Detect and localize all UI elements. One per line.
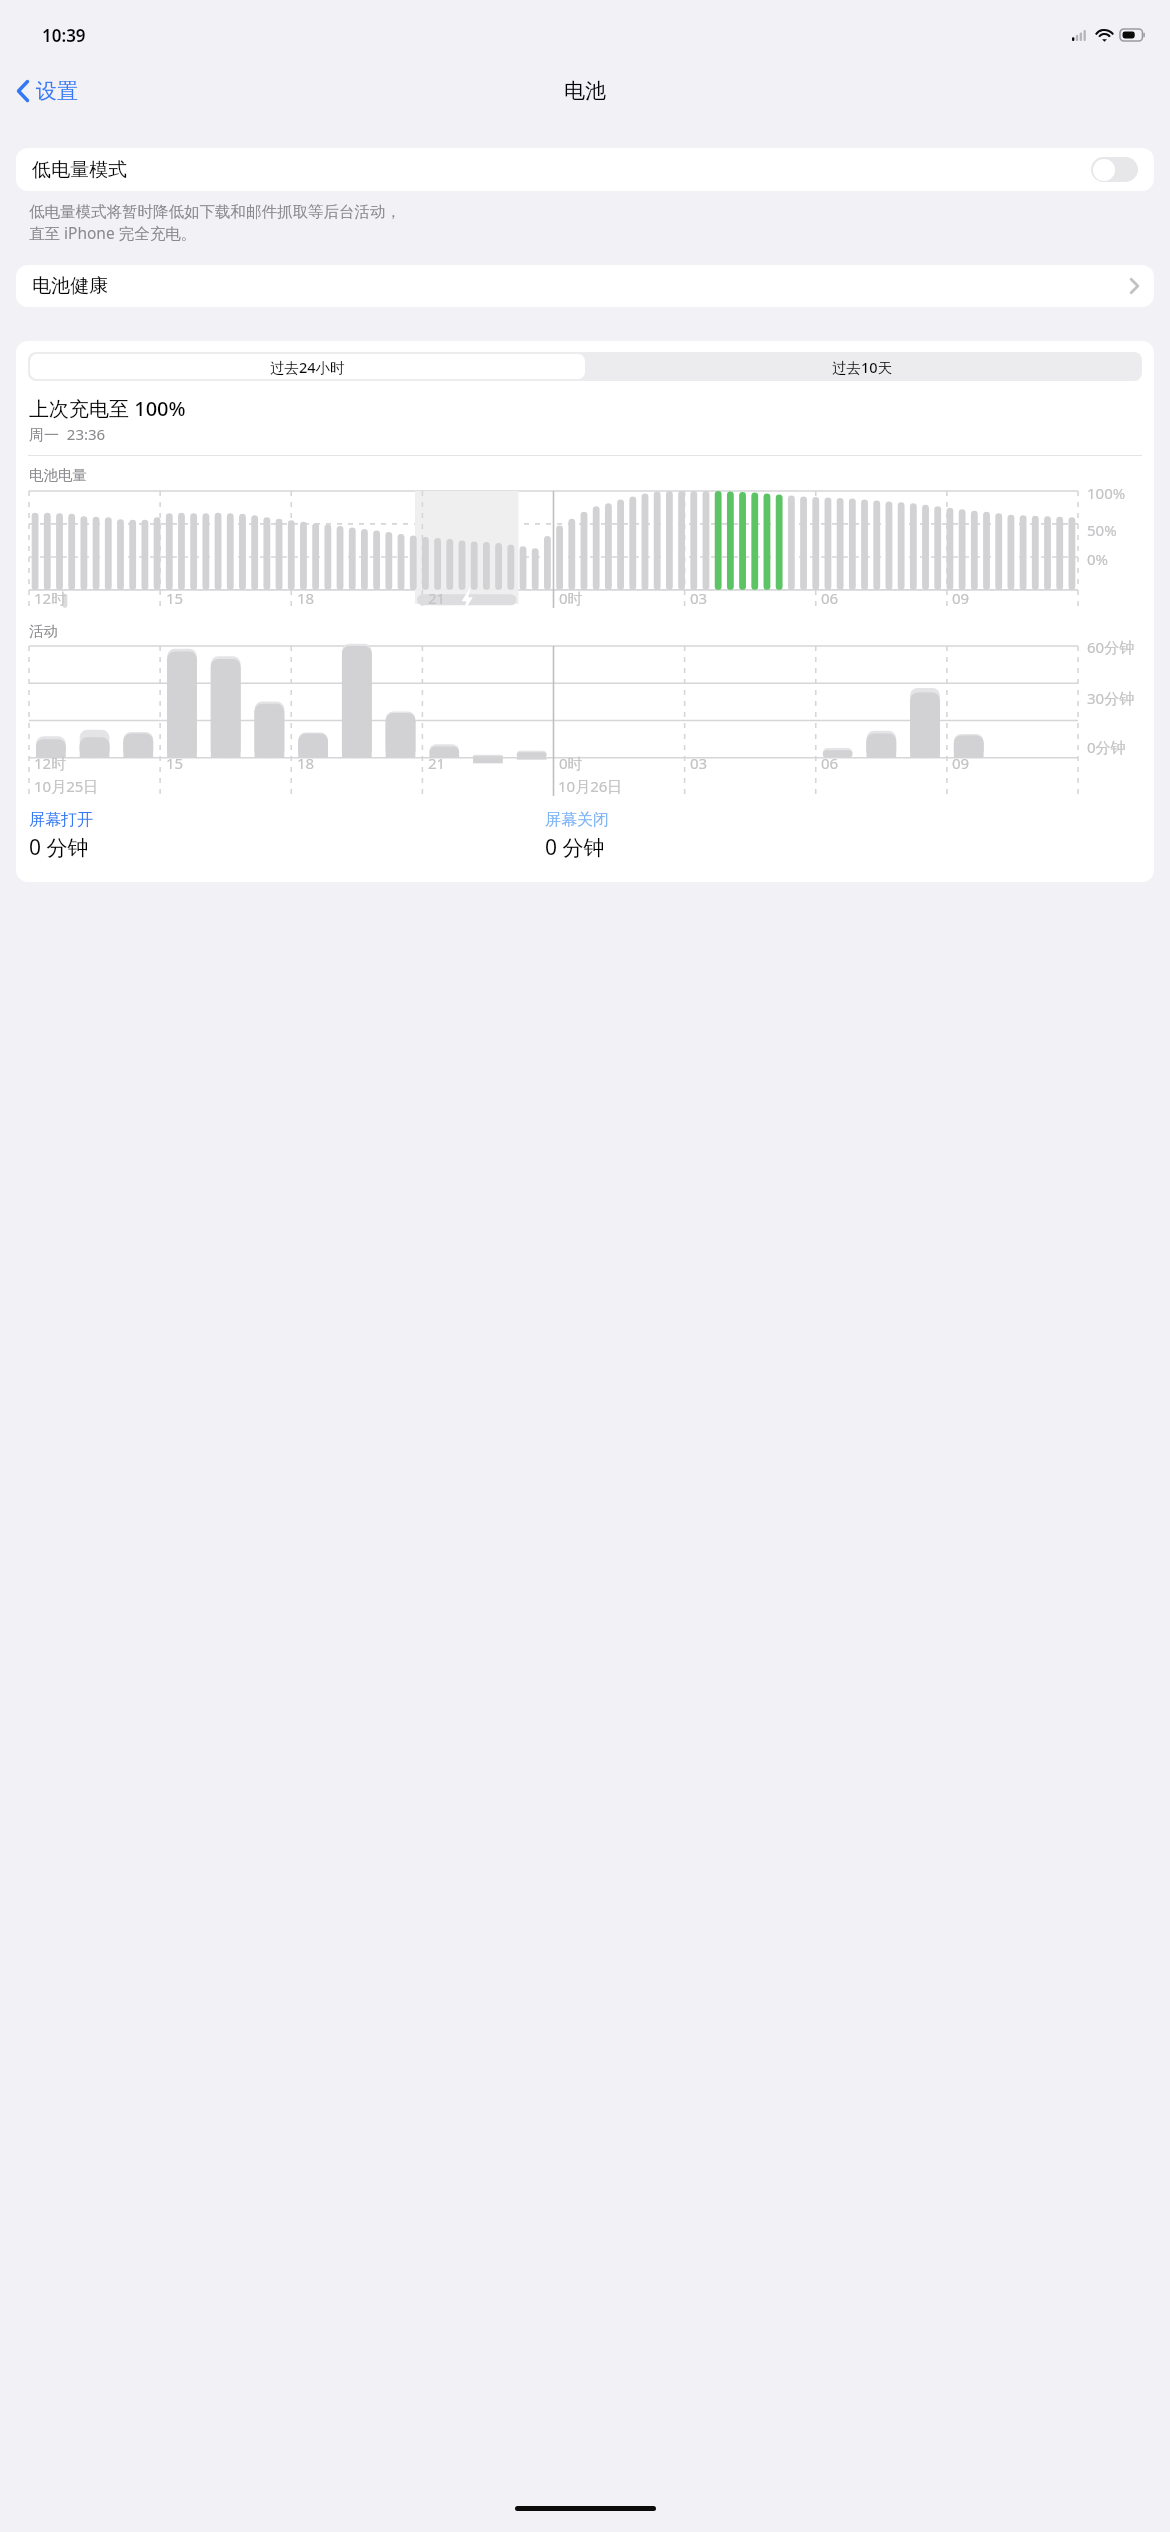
staticText: 10月25日 bbox=[34, 776, 99, 796]
staticText: 低电量模式 bbox=[32, 158, 127, 182]
staticText: 18 bbox=[297, 753, 315, 773]
staticText: 30分钟 bbox=[1087, 688, 1135, 708]
staticText: 18 bbox=[297, 588, 315, 608]
button[interactable]: 电池健康 bbox=[16, 265, 1154, 307]
staticText: 06 bbox=[821, 753, 839, 773]
staticText: 10月26日 bbox=[558, 776, 623, 796]
staticText: 12时 bbox=[34, 753, 67, 773]
button[interactable]: 过去24小时 bbox=[30, 354, 585, 379]
staticText: 03 bbox=[690, 588, 708, 608]
staticText: 设置 bbox=[36, 78, 78, 104]
staticText: 10:39 bbox=[42, 24, 86, 47]
staticText: 屏幕打开 bbox=[29, 810, 93, 830]
staticText: 100% bbox=[1087, 483, 1126, 503]
staticText: 09 bbox=[952, 753, 970, 773]
staticText: 21 bbox=[428, 753, 446, 773]
button[interactable]: 低电量模式 bbox=[16, 148, 1154, 191]
staticText: 06 bbox=[821, 588, 839, 608]
staticText: 15 bbox=[166, 753, 184, 773]
staticText: 09 bbox=[952, 588, 970, 608]
staticText: 直至 iPhone 完全充电。 bbox=[29, 222, 197, 243]
staticText: 15 bbox=[166, 588, 184, 608]
staticText: 周一 23:36 bbox=[29, 424, 106, 444]
staticText: 低电量模式将暂时降低如下载和邮件抓取等后台活动， bbox=[29, 202, 401, 222]
button[interactable]: 过去10天 bbox=[585, 354, 1140, 379]
staticText: 21 bbox=[428, 588, 446, 608]
staticText: 60分钟 bbox=[1087, 637, 1135, 657]
staticText: 0 分钟 bbox=[29, 833, 89, 862]
staticText: 50% bbox=[1087, 520, 1117, 540]
staticText: 12时 bbox=[34, 588, 67, 608]
staticText: 0分钟 bbox=[1087, 737, 1126, 757]
staticText: 0 分钟 bbox=[545, 833, 605, 862]
staticText: 03 bbox=[690, 753, 708, 773]
button[interactable]: 设置 bbox=[0, 67, 90, 115]
staticText: 0时 bbox=[559, 588, 583, 608]
staticText: 0% bbox=[1087, 549, 1109, 569]
staticText: 上次充电至 100% bbox=[29, 395, 186, 422]
button[interactable]: 低电量模式开关 bbox=[1091, 157, 1138, 182]
staticText: 活动 bbox=[29, 622, 58, 640]
staticText: 0时 bbox=[559, 753, 583, 773]
staticText: 电池健康 bbox=[32, 274, 108, 298]
staticText: 屏幕关闭 bbox=[545, 810, 609, 830]
staticText: 电池电量 bbox=[29, 466, 87, 484]
staticText: 过去10天 bbox=[832, 357, 893, 377]
staticText: 电池 bbox=[564, 78, 606, 104]
staticText: 过去24小时 bbox=[270, 357, 345, 377]
